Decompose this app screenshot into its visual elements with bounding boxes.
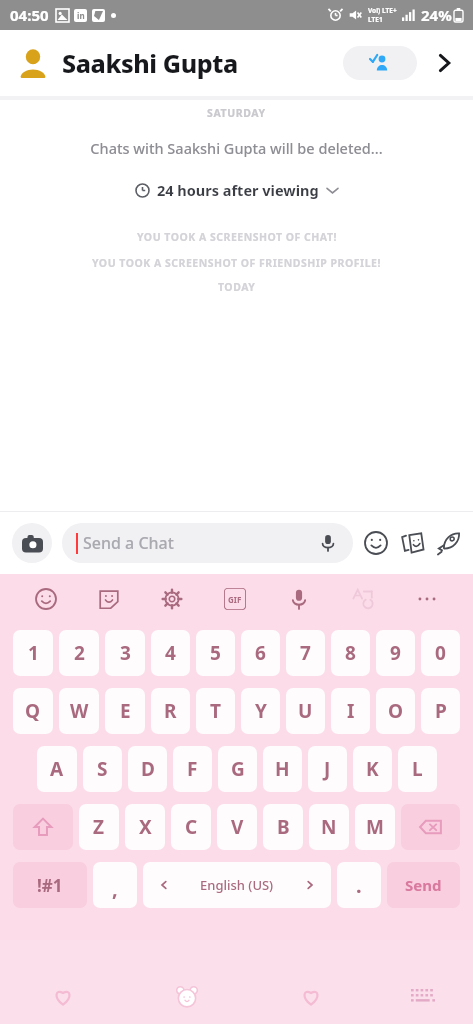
button[interactable]: 3 (105, 630, 145, 676)
staticText: . (356, 872, 362, 899)
staticText: L (412, 756, 423, 782)
staticText: YOU TOOK A SCREENSHOT OF CHAT! (137, 230, 337, 244)
staticText: W (70, 698, 89, 724)
button[interactable]: Y (241, 688, 280, 734)
staticText: Send (405, 875, 442, 895)
staticText: 9 (390, 640, 401, 666)
button[interactable]: R (151, 688, 190, 734)
button[interactable]: Profile (14, 44, 52, 82)
button[interactable]: M (355, 804, 395, 850)
button[interactable]: X (125, 804, 165, 850)
button[interactable]: T (196, 688, 235, 734)
button[interactable]: Back (0, 970, 125, 1024)
button[interactable]: 4 (151, 630, 190, 676)
staticText: YOU TOOK A SCREENSHOT OF FRIENDSHIP PROF… (92, 256, 381, 270)
staticText: B (277, 814, 290, 840)
button[interactable]: S (83, 746, 122, 792)
staticText: P (435, 698, 447, 724)
button[interactable]: Symbols (13, 862, 87, 908)
button[interactable]: Send rocket (435, 530, 461, 556)
button[interactable]: 8 (331, 630, 370, 676)
staticText: X (139, 814, 152, 840)
staticText: R (164, 698, 177, 724)
button[interactable]: V (217, 804, 257, 850)
staticText: Saakshi Gupta (62, 46, 238, 80)
button[interactable]: 1 (13, 630, 53, 676)
button[interactable]: Open profile (427, 46, 461, 80)
button[interactable]: , (93, 862, 137, 908)
button[interactable]: C (171, 804, 211, 850)
button[interactable]: Sticker (77, 574, 140, 624)
staticText: 2 (74, 640, 85, 666)
button[interactable]: Stickers (363, 530, 389, 556)
button[interactable]: J (308, 746, 347, 792)
button[interactable]: More options (395, 574, 459, 624)
button[interactable]: Emoji (14, 574, 77, 624)
staticText: in (77, 10, 85, 21)
staticText: !#1 (37, 874, 63, 897)
button[interactable]: . (337, 862, 381, 908)
button[interactable]: Home (125, 970, 249, 1024)
button[interactable]: Settings (140, 574, 203, 624)
button[interactable]: O (376, 688, 415, 734)
button[interactable]: I (331, 688, 370, 734)
button[interactable]: D (128, 746, 167, 792)
staticText: 7 (300, 640, 311, 666)
staticText: O (388, 698, 404, 724)
button[interactable]: B (263, 804, 303, 850)
button[interactable]: K (353, 746, 392, 792)
button[interactable]: Recents (249, 970, 373, 1024)
staticText: , (112, 875, 118, 902)
button[interactable]: A (37, 746, 77, 792)
staticText: I (347, 698, 355, 724)
button[interactable]: 2 (59, 630, 99, 676)
button[interactable]: 9 (376, 630, 415, 676)
button[interactable]: English (US) (143, 862, 331, 908)
staticText: 1 (28, 640, 39, 666)
button[interactable]: Shift (13, 804, 73, 850)
button[interactable]: Backspace (401, 804, 460, 850)
button[interactable]: Z (79, 804, 119, 850)
button[interactable]: W (59, 688, 99, 734)
staticText: 0 (435, 640, 446, 666)
button[interactable]: H (263, 746, 302, 792)
staticText: GIF (228, 594, 242, 605)
staticText: A (50, 756, 64, 782)
button[interactable]: Send a Chat (62, 523, 353, 563)
button[interactable]: Hide keyboard (373, 970, 473, 1024)
button[interactable]: P (421, 688, 460, 734)
staticText: 8 (345, 640, 356, 666)
button[interactable]: F (173, 746, 212, 792)
button[interactable]: 7 (286, 630, 325, 676)
button[interactable]: Add friend (343, 46, 417, 80)
staticText: F (187, 756, 198, 782)
staticText: Chats with Saakshi Gupta will be deleted… (90, 138, 383, 158)
button[interactable]: Send (387, 862, 460, 908)
staticText: Send a Chat (83, 532, 174, 554)
button[interactable]: 24 hours after viewing (119, 172, 354, 208)
staticText: 04:50 (10, 5, 49, 25)
button[interactable]: L (398, 746, 437, 792)
button[interactable]: GIF (203, 574, 267, 624)
button[interactable]: Translate (331, 574, 395, 624)
staticText: N (321, 814, 337, 840)
staticText: LTE1 (368, 15, 383, 24)
button[interactable]: G (218, 746, 257, 792)
button[interactable]: E (105, 688, 145, 734)
button[interactable]: Voice note (317, 532, 339, 554)
staticText: English (US) (200, 876, 274, 894)
staticText: T (210, 698, 221, 724)
button[interactable]: 5 (196, 630, 235, 676)
button[interactable]: Saved snaps (399, 530, 425, 556)
staticText: TODAY (218, 280, 256, 294)
button[interactable]: U (286, 688, 325, 734)
button[interactable]: 0 (421, 630, 460, 676)
button[interactable]: Camera (12, 523, 52, 563)
button[interactable]: Voice typing (267, 574, 331, 624)
button[interactable]: 6 (241, 630, 280, 676)
staticText: 6 (255, 640, 266, 666)
button[interactable]: N (309, 804, 349, 850)
staticText: M (366, 814, 384, 840)
staticText: SATURDAY (207, 106, 266, 120)
button[interactable]: Q (13, 688, 53, 734)
